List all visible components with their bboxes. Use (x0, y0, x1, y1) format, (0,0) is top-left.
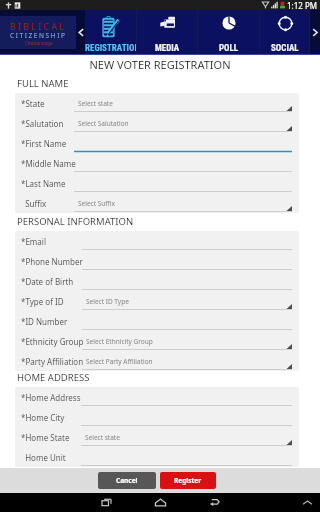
staticText: PERSONAL INFORMATION (17, 215, 134, 228)
button[interactable]: *Party Affiliation (15, 351, 299, 371)
button[interactable]: Cancel (98, 472, 156, 489)
button[interactable]: Previous tabs (76, 10, 85, 55)
button[interactable]: *Ethnicity Group (15, 331, 299, 351)
staticText: *Ethnicity Group (21, 336, 84, 347)
button[interactable]: *Email (15, 231, 299, 251)
staticText: HOME ADDRESS (17, 371, 90, 384)
button[interactable]: Next tabs (310, 10, 320, 55)
staticText: *Type of ID (21, 296, 64, 307)
staticText: *Middle Name (21, 158, 76, 169)
staticText: *Home City (21, 412, 65, 423)
staticText: Select Ethnicity Group (86, 337, 153, 346)
staticText: Cancel (116, 476, 138, 485)
button[interactable]: MEDIA (137, 10, 198, 55)
button[interactable]: *Home Address (15, 387, 299, 407)
staticText: Select state (78, 99, 113, 108)
staticText: *Party Affiliation (21, 356, 84, 367)
staticText: Select Suffix (78, 199, 115, 208)
staticText: BIBLICAL (10, 20, 67, 32)
staticText: POLL (219, 43, 239, 54)
button[interactable]: POLL (198, 10, 260, 55)
button[interactable]: *Last Name (15, 173, 299, 193)
staticText: CITIZENSHIP (10, 31, 67, 40)
button[interactable]: SOCIAL (260, 10, 310, 55)
staticText: *First Name (21, 138, 67, 149)
button[interactable]: Home Unit (15, 447, 299, 467)
button[interactable]: *State (15, 93, 299, 113)
button[interactable]: REGISTRATION (85, 10, 137, 55)
staticText: Select state (85, 433, 120, 442)
staticText: *Home State (21, 432, 70, 443)
staticText: *Home Address (21, 392, 81, 403)
staticText: Chattanooga (25, 40, 53, 46)
button[interactable]: *Home State (15, 427, 299, 447)
staticText: Home Unit (21, 452, 66, 463)
button[interactable]: *First Name (15, 133, 299, 153)
staticText: Register (174, 476, 202, 485)
button[interactable]: Register (160, 472, 216, 489)
button[interactable]: Suffix (15, 193, 299, 213)
button[interactable]: *ID Number (15, 311, 299, 331)
staticText: Suffix (21, 198, 47, 209)
staticText: Select ID Type (86, 297, 129, 306)
staticText: FULL NAME (17, 77, 69, 90)
staticText: MEDIA (155, 43, 180, 54)
staticText: *Phone Number (21, 256, 83, 267)
staticText: Select Salutation (78, 119, 129, 128)
button[interactable]: *Type of ID (15, 291, 299, 311)
button[interactable]: Recent apps (79, 493, 133, 512)
staticText: *State (21, 98, 45, 109)
staticText: *Last Name (21, 178, 66, 189)
staticText: *Email (21, 236, 46, 247)
button[interactable]: *Home City (15, 407, 299, 427)
button[interactable]: *Middle Name (15, 153, 299, 173)
button[interactable]: Expand (294, 493, 320, 512)
staticText: SOCIAL (271, 43, 299, 54)
button[interactable]: BIBLICAL (0, 10, 76, 55)
button[interactable]: *Date of Birth (15, 271, 299, 291)
staticText: Select Party Affiliation (86, 357, 153, 366)
button[interactable]: *Salutation (15, 113, 299, 133)
staticText: 1:12 PM (287, 0, 318, 10)
staticText: *Salutation (21, 118, 64, 129)
button[interactable]: Home (133, 493, 187, 512)
staticText: *ID Number (21, 316, 68, 327)
staticText: *Date of Birth (21, 276, 74, 287)
button[interactable]: Back (187, 493, 241, 512)
staticText: NEW VOTER REGISTRATION (0, 57, 320, 72)
staticText: REGISTRATION (85, 43, 137, 54)
button[interactable]: *Phone Number (15, 251, 299, 271)
